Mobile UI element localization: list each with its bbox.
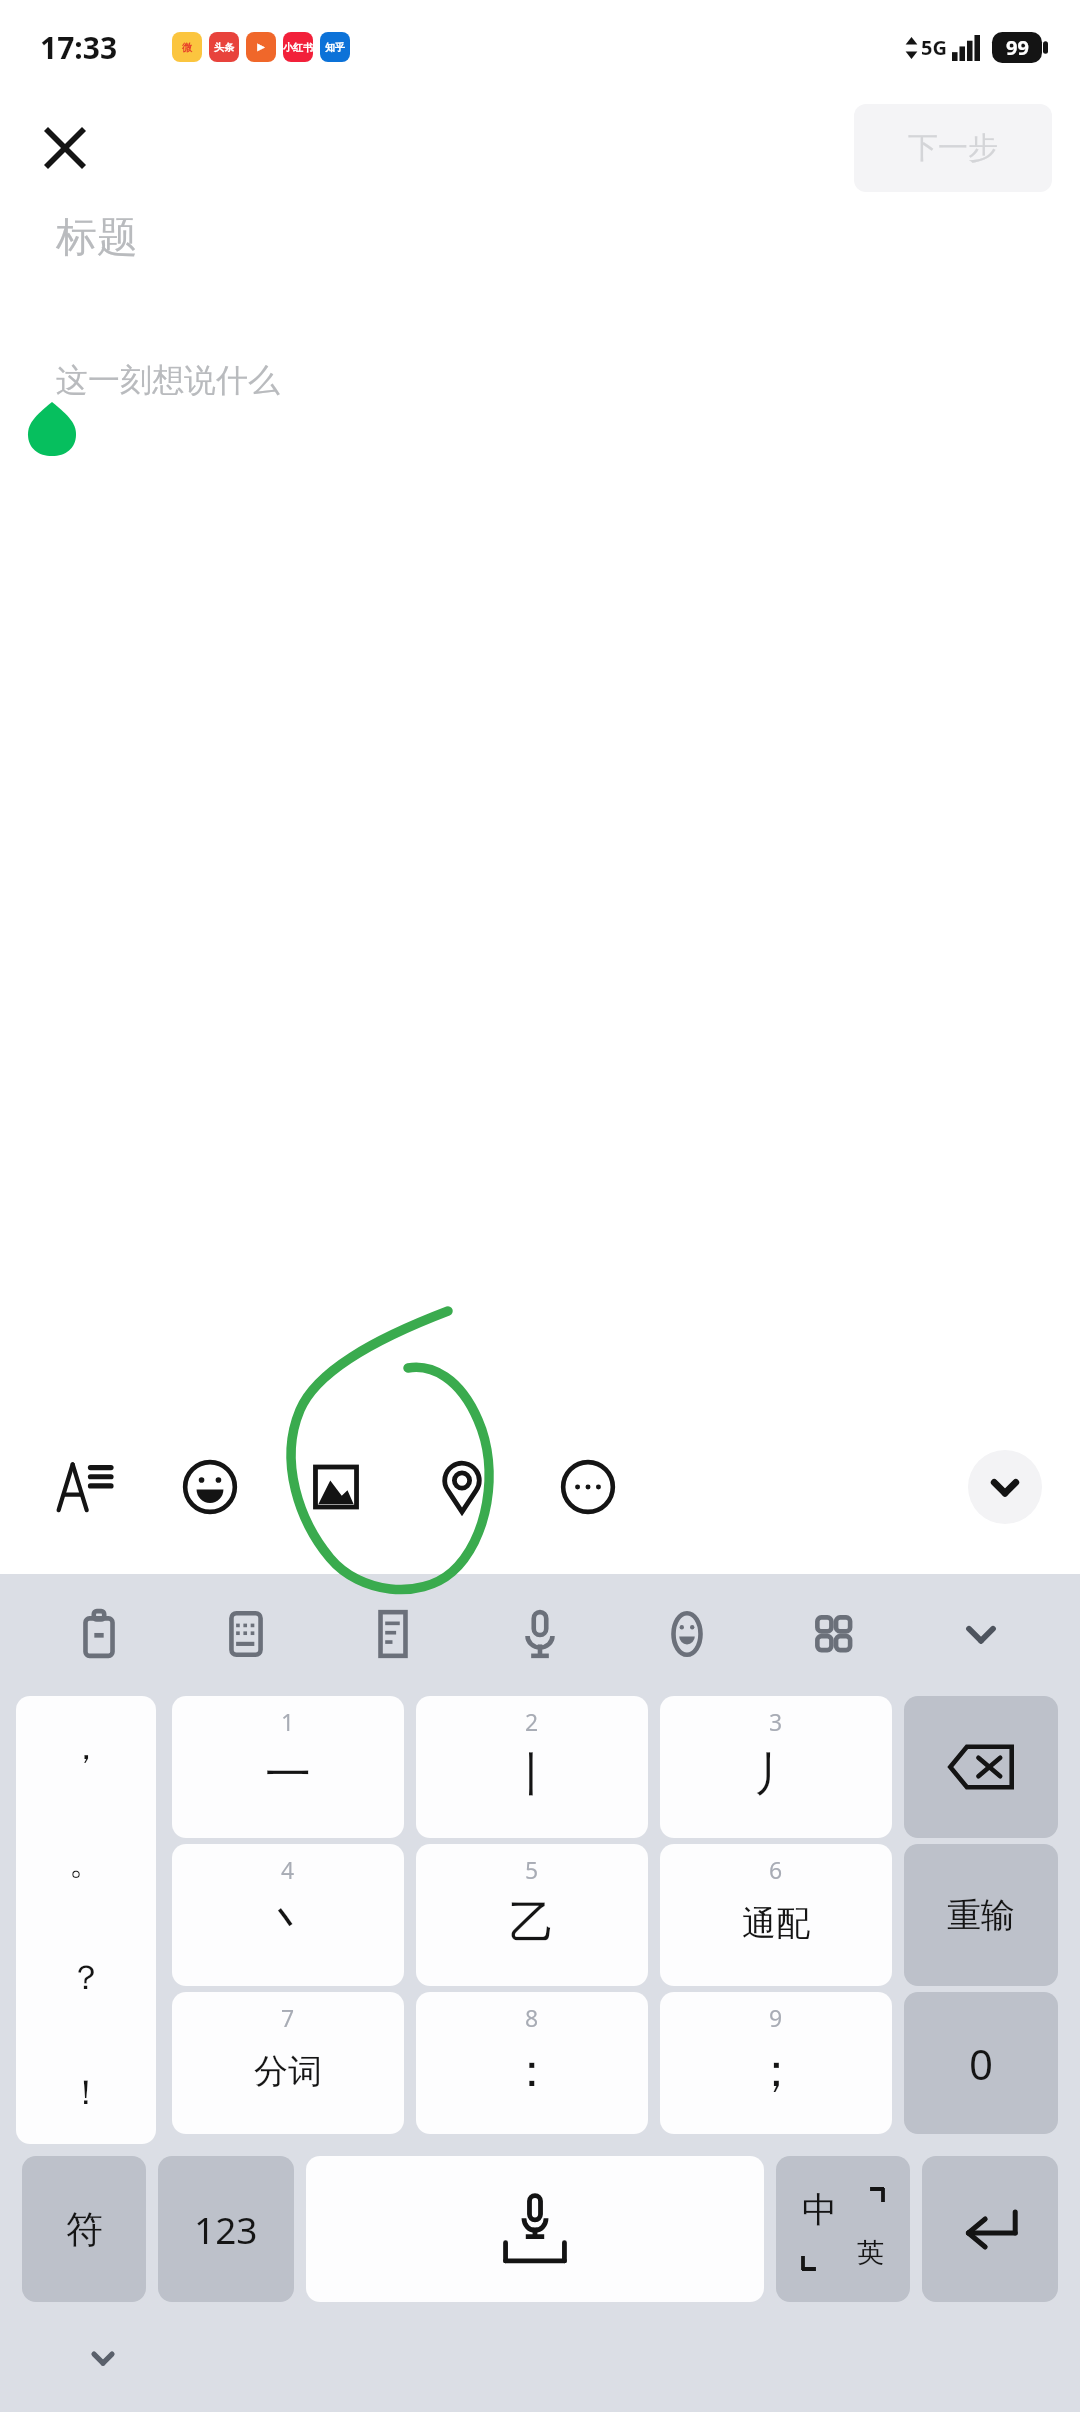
- staticText: 3: [769, 1706, 783, 1737]
- button[interactable]: Close keyboard: [907, 1584, 1054, 1684]
- staticText: 知乎: [325, 41, 345, 54]
- staticText: 标题: [56, 212, 138, 264]
- staticText: 丿: [753, 1746, 799, 1804]
- button[interactable]: Enter: [922, 2156, 1058, 2302]
- button[interactable]: Panels: [760, 1584, 907, 1684]
- staticText: 乙: [509, 1894, 555, 1952]
- staticText: 丶: [265, 1894, 311, 1952]
- staticText: 99: [1006, 34, 1029, 61]
- button[interactable]: Collapse: [968, 1450, 1042, 1524]
- button[interactable]: Punctuation: [16, 1696, 156, 2144]
- button[interactable]: Voice input: [466, 1584, 613, 1684]
- button[interactable]: ：: [416, 1992, 648, 2134]
- button[interactable]: Text format: [46, 1449, 122, 1525]
- button[interactable]: Clipboard: [26, 1584, 172, 1684]
- staticText: 5G: [921, 34, 947, 61]
- staticText: ；: [753, 2042, 799, 2100]
- staticText: 下一步: [908, 129, 998, 167]
- staticText: 这一刻想说什么: [56, 360, 280, 400]
- button[interactable]: ；: [660, 1992, 892, 2134]
- button[interactable]: 重输: [904, 1844, 1058, 1986]
- staticText: 0: [969, 2035, 994, 2092]
- button[interactable]: 0: [904, 1992, 1058, 2134]
- staticText: 符: [66, 2206, 103, 2253]
- staticText: 英: [857, 2236, 884, 2270]
- staticText: 微: [182, 41, 192, 54]
- staticText: 重输: [947, 1894, 1015, 1937]
- button[interactable]: 分词: [172, 1992, 404, 2134]
- button[interactable]: Location: [424, 1449, 500, 1525]
- button[interactable]: More: [550, 1449, 626, 1525]
- staticText: ？: [69, 1956, 103, 1999]
- staticText: 中: [802, 2188, 837, 2232]
- staticText: 4: [281, 1854, 295, 1885]
- button[interactable]: 丿: [660, 1696, 892, 1838]
- button[interactable]: 下一步: [854, 104, 1052, 192]
- button[interactable]: 丨: [416, 1696, 648, 1838]
- staticText: 分词: [254, 2050, 322, 2093]
- staticText: 7: [281, 2002, 295, 2033]
- button[interactable]: 符: [22, 2156, 146, 2302]
- staticText: 9: [769, 2002, 783, 2033]
- staticText: 小红书: [283, 41, 313, 54]
- staticText: 123: [194, 2204, 258, 2254]
- button[interactable]: Close: [32, 115, 98, 181]
- staticText: 2: [525, 1706, 539, 1737]
- button[interactable]: 123: [158, 2156, 294, 2302]
- button[interactable]: 一: [172, 1696, 404, 1838]
- staticText: 。: [69, 1841, 103, 1884]
- button[interactable]: Add image: [298, 1449, 374, 1525]
- staticText: 丨: [509, 1746, 555, 1804]
- button[interactable]: Emoji: [172, 1449, 248, 1525]
- staticText: ：: [509, 2042, 555, 2100]
- button[interactable]: 乙: [416, 1844, 648, 1986]
- staticText: ！: [69, 2071, 103, 2114]
- staticText: 8: [525, 2002, 539, 2033]
- button[interactable]: Hide keyboard: [74, 2329, 132, 2387]
- button[interactable]: Emoji: [613, 1584, 760, 1684]
- staticText: 17:33: [40, 27, 118, 68]
- staticText: 6: [769, 1854, 783, 1885]
- staticText: 头条: [214, 41, 234, 54]
- button[interactable]: 通配: [660, 1844, 892, 1986]
- staticText: 通配: [742, 1902, 810, 1945]
- staticText: ，: [69, 1726, 103, 1769]
- button[interactable]: 中英切换: [776, 2156, 910, 2302]
- button[interactable]: 丶: [172, 1844, 404, 1986]
- button[interactable]: Backspace: [904, 1696, 1058, 1838]
- button[interactable]: Notes: [319, 1584, 466, 1684]
- staticText: 1: [281, 1706, 295, 1737]
- button[interactable]: Keyboard layout: [172, 1584, 319, 1684]
- button[interactable]: Space and voice input: [306, 2156, 764, 2302]
- staticText: ▶: [257, 41, 265, 53]
- staticText: 一: [265, 1746, 311, 1804]
- staticText: 5: [525, 1854, 539, 1885]
